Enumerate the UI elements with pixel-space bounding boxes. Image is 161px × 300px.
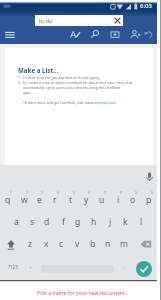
- staticText: 5: [73, 191, 75, 195]
- staticText: Make a List...: [18, 66, 59, 74]
- button[interactable]: g: [70, 211, 86, 233]
- button[interactable]: 7: [94, 189, 110, 211]
- staticText: v: [75, 238, 80, 250]
- button[interactable]: [5, 48, 153, 165]
- staticText: z: [28, 238, 33, 250]
- staticText: 1. To write your list, just tap here and…: [18, 75, 101, 80]
- button[interactable]: ?123: [3, 260, 22, 274]
- staticText: 0: [151, 191, 153, 195]
- staticText: to do: [39, 17, 53, 24]
- button[interactable]: Clear text: [112, 15, 123, 26]
- button[interactable]: www.onenote.com: [85, 100, 116, 105]
- staticText: ,: [30, 262, 32, 270]
- button[interactable]: 1: [0, 189, 16, 211]
- staticText: f: [62, 216, 65, 228]
- staticText: p: [146, 194, 152, 206]
- button[interactable]: Present: [108, 27, 122, 41]
- staticText: c: [59, 238, 64, 250]
- button[interactable]: m: [116, 233, 132, 255]
- staticText: l: [140, 216, 143, 228]
- button[interactable]: Shift: [3, 236, 19, 252]
- button[interactable]: ,: [25, 260, 37, 274]
- button[interactable]: 0: [141, 189, 157, 211]
- staticText: 6: [88, 191, 90, 195]
- staticText: 3: [41, 191, 43, 195]
- staticText: To learn more and get OneNote, visit: [23, 100, 85, 105]
- button[interactable]: x: [38, 233, 54, 255]
- staticText: t: [69, 194, 73, 206]
- button[interactable]: 3: [31, 189, 47, 211]
- button[interactable]: k: [117, 211, 133, 233]
- staticText: s: [30, 216, 35, 228]
- staticText: automatically syncs across your devices …: [23, 85, 120, 90]
- staticText: 6:05: [140, 2, 152, 10]
- staticText: i: [117, 194, 120, 206]
- button[interactable]: j: [102, 211, 118, 233]
- button[interactable]: Share: [128, 27, 142, 41]
- button[interactable]: Backspace: [138, 236, 154, 252]
- button[interactable]: a: [8, 211, 24, 233]
- button[interactable]: h: [86, 211, 102, 233]
- staticText: g: [75, 216, 81, 228]
- staticText: y: [84, 194, 89, 206]
- staticText: Pick a name for your new document: [37, 289, 125, 296]
- button[interactable]: b: [85, 233, 101, 255]
- button[interactable]: Done: [136, 261, 152, 277]
- button[interactable]: Search: [88, 27, 102, 41]
- staticText: h: [91, 216, 97, 228]
- button[interactable]: Navigation menu: [2, 27, 18, 43]
- button[interactable]: 4: [47, 189, 63, 211]
- staticText: w: [21, 194, 28, 206]
- button[interactable]: 6: [78, 189, 94, 211]
- staticText: 2: [26, 191, 28, 195]
- staticText: j: [109, 216, 112, 228]
- staticText: b: [90, 238, 96, 250]
- staticText: 8: [120, 191, 122, 195]
- staticText: a: [14, 216, 19, 228]
- staticText: q: [5, 194, 11, 206]
- staticText: 4: [57, 191, 59, 195]
- staticText: d: [44, 216, 50, 228]
- staticText: 7: [104, 191, 106, 195]
- button[interactable]: z: [22, 233, 38, 255]
- button[interactable]: v: [69, 233, 85, 255]
- staticText: .: [124, 262, 126, 270]
- staticText: m: [120, 238, 129, 250]
- button[interactable]: Undo: [142, 27, 156, 41]
- staticText: ?123: [8, 264, 18, 270]
- staticText: u: [99, 194, 105, 206]
- staticText: x: [44, 238, 49, 250]
- staticText: n: [105, 238, 111, 250]
- staticText: 2. Or, create a note or digital notebook…: [18, 80, 133, 85]
- button[interactable]: Text formatting: [68, 27, 82, 41]
- staticText: 9: [135, 191, 137, 195]
- button[interactable]: d: [39, 211, 55, 233]
- button[interactable]: c: [53, 233, 69, 255]
- button[interactable]: 9: [125, 189, 141, 211]
- button[interactable]: n: [100, 233, 116, 255]
- staticText: r: [53, 194, 57, 206]
- staticText: e: [37, 194, 42, 206]
- button[interactable]: 2: [16, 189, 32, 211]
- button[interactable]: l: [133, 211, 149, 233]
- button[interactable]: 8: [110, 189, 126, 211]
- button[interactable]: s: [24, 211, 40, 233]
- staticText: 1: [10, 191, 12, 195]
- button[interactable]: .: [119, 260, 131, 274]
- button[interactable]: 5: [63, 189, 79, 211]
- button[interactable]: Voice input: [143, 170, 156, 183]
- staticText: o: [130, 194, 136, 206]
- staticText: apps.: [23, 90, 32, 95]
- staticText: k: [123, 216, 128, 228]
- button[interactable]: to do: [35, 15, 123, 26]
- button[interactable]: f: [55, 211, 71, 233]
